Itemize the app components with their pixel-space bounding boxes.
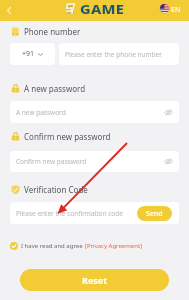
staticText: +91 (22, 49, 35, 59)
button[interactable]: Show password (164, 157, 173, 166)
staticText: EN (171, 5, 181, 15)
button[interactable]: Show password (164, 108, 173, 117)
staticText: A new password (16, 108, 66, 117)
button[interactable]: +91 (10, 43, 55, 65)
button[interactable]: A new password (10, 101, 179, 123)
staticText: Confirm new password (16, 157, 87, 166)
staticText: Phone number (24, 26, 81, 37)
button[interactable]: Reset (20, 269, 169, 291)
staticText: Please enter the phone number (65, 50, 162, 59)
button[interactable]: I have read and agree (10, 242, 143, 250)
button[interactable]: Confirm new password (10, 151, 179, 172)
staticText: Verification Code (24, 184, 88, 195)
staticText: Reset (82, 274, 108, 286)
staticText: I have read and agree (21, 242, 83, 250)
staticText: GAME (80, 1, 125, 17)
button[interactable]: Back (0, 1, 19, 20)
staticText: Confirm new password (24, 131, 111, 142)
button[interactable]: [Privacy Agreement] (85, 242, 143, 250)
staticText: Send (146, 209, 163, 219)
staticText: A new password (24, 83, 86, 94)
button[interactable]: Please enter the phone number (59, 43, 179, 65)
button[interactable]: Please enter the confirmation code (16, 209, 123, 218)
button[interactable]: Send (137, 206, 172, 221)
